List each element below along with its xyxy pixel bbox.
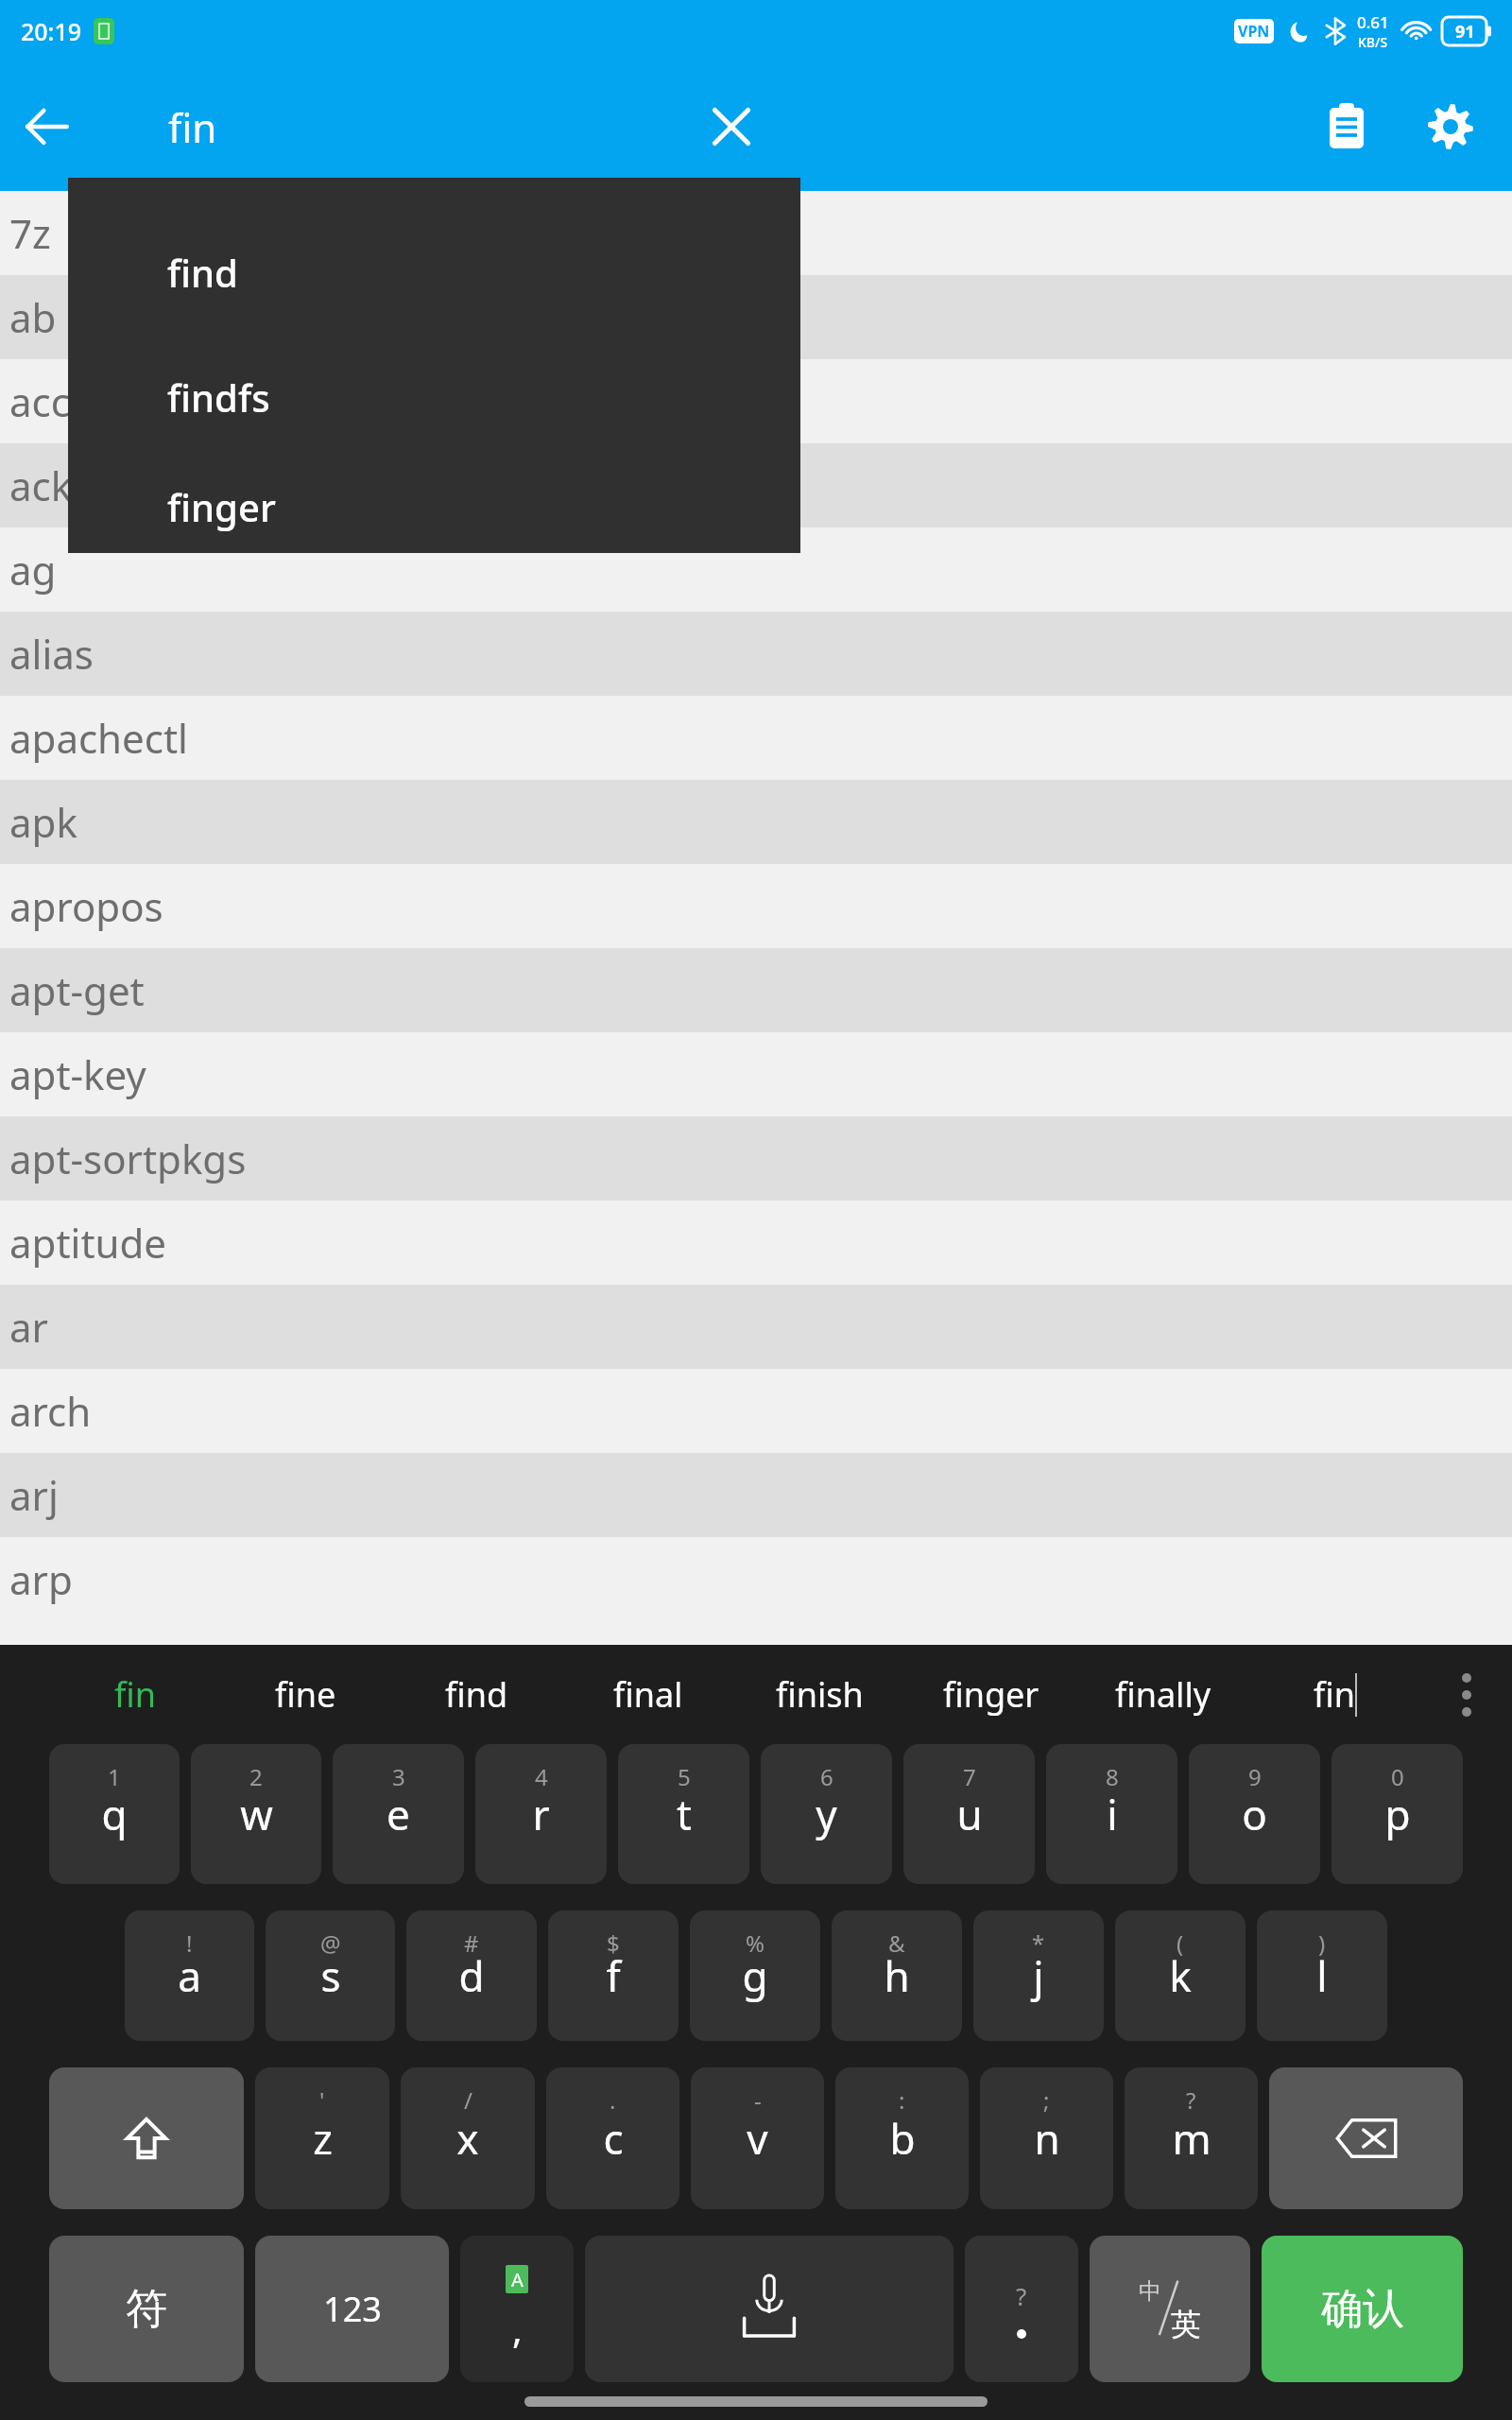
button[interactable]: o — [1189, 1744, 1320, 1884]
button[interactable]: Backspace — [1269, 2067, 1463, 2209]
button[interactable]: ag — [0, 527, 1512, 612]
button[interactable]: arj — [0, 1453, 1512, 1537]
button[interactable]: 符 — [49, 2236, 244, 2382]
button[interactable]: find — [68, 210, 800, 335]
staticText: find — [445, 1671, 508, 1718]
button[interactable]: apachectl — [0, 696, 1512, 780]
button[interactable]: apt-sortpkgs — [0, 1116, 1512, 1201]
button[interactable]: acc — [0, 359, 1512, 443]
button[interactable]: ar — [0, 1285, 1512, 1369]
staticText: m — [1172, 2110, 1211, 2167]
button[interactable]: Switch language — [1090, 2236, 1250, 2382]
staticText: 7z — [9, 206, 51, 260]
button[interactable]: aptitude — [0, 1201, 1512, 1285]
button[interactable]: apk — [0, 780, 1512, 864]
button[interactable]: Settings — [1399, 75, 1503, 179]
staticText: ack — [9, 458, 73, 512]
button[interactable]: e — [333, 1744, 464, 1884]
button[interactable]: arch — [0, 1369, 1512, 1453]
button[interactable]: q — [49, 1744, 180, 1884]
staticText: w — [240, 1786, 273, 1842]
staticText: apk — [9, 795, 77, 849]
button[interactable]: Clear — [679, 75, 783, 179]
staticText: k — [1169, 1947, 1192, 2004]
button[interactable]: finger — [905, 1645, 1077, 1744]
staticText: y — [816, 1786, 837, 1842]
button[interactable]: 123 — [255, 2236, 449, 2382]
button[interactable]: ab — [0, 275, 1512, 359]
button[interactable]: n — [980, 2067, 1113, 2209]
staticText: 9 — [1248, 1761, 1262, 1792]
button[interactable]: fin — [1249, 1645, 1421, 1744]
button[interactable]: arp — [0, 1537, 1512, 1621]
button[interactable]: i — [1046, 1744, 1177, 1884]
staticText: d — [458, 1947, 485, 2004]
staticText: finish — [776, 1671, 864, 1718]
button[interactable]: Space — [585, 2236, 954, 2382]
button[interactable]: ? — [965, 2236, 1078, 2382]
button[interactable]: finally — [1077, 1645, 1249, 1744]
button[interactable]: t — [618, 1744, 749, 1884]
staticText: $ — [607, 1927, 620, 1959]
button[interactable]: g — [690, 1910, 820, 2041]
button[interactable]: alias — [0, 612, 1512, 696]
button[interactable]: p — [1332, 1744, 1463, 1884]
staticText: ? — [1016, 2279, 1027, 2312]
button[interactable]: Shift — [49, 2067, 244, 2209]
staticText: 符 — [126, 2283, 167, 2335]
staticText: 4 — [535, 1761, 548, 1792]
button[interactable]: l — [1257, 1910, 1387, 2041]
button[interactable]: u — [903, 1744, 1035, 1884]
staticText: 3 — [392, 1761, 405, 1792]
staticText: r — [532, 1786, 550, 1842]
button[interactable]: j — [973, 1910, 1104, 2041]
button[interactable]: y — [761, 1744, 892, 1884]
staticText: 6 — [820, 1761, 833, 1792]
button[interactable]: A — [460, 2236, 574, 2382]
button[interactable]: apt-key — [0, 1032, 1512, 1116]
button[interactable]: finger — [68, 459, 800, 553]
button[interactable]: x — [401, 2067, 535, 2209]
staticText: 1 — [108, 1761, 121, 1792]
button[interactable]: r — [475, 1744, 607, 1884]
staticText: ab — [9, 290, 57, 344]
button[interactable]: w — [191, 1744, 321, 1884]
button[interactable]: a — [125, 1910, 254, 2041]
button[interactable]: f — [548, 1910, 679, 2041]
button[interactable]: final — [562, 1645, 733, 1744]
button[interactable]: Clipboard — [1295, 75, 1399, 179]
button[interactable]: m — [1125, 2067, 1258, 2209]
button[interactable]: d — [406, 1910, 537, 2041]
staticText: b — [889, 2110, 916, 2167]
staticText: 英 — [1171, 2306, 1201, 2343]
button[interactable]: fin — [49, 1645, 220, 1744]
staticText: q — [101, 1786, 128, 1842]
button[interactable]: apt-get — [0, 948, 1512, 1032]
staticText: f — [606, 1947, 621, 2004]
staticText: , — [512, 2303, 523, 2354]
button[interactable]: ack — [0, 443, 1512, 527]
staticText: : — [899, 2084, 905, 2116]
button[interactable]: 7z — [0, 191, 1512, 275]
staticText: # — [464, 1927, 479, 1959]
button[interactable]: apropos — [0, 864, 1512, 948]
button[interactable]: finish — [733, 1645, 905, 1744]
button[interactable]: h — [832, 1910, 962, 2041]
staticText: @ — [320, 1927, 341, 1959]
staticText: ar — [9, 1300, 48, 1354]
button[interactable]: findfs — [68, 335, 800, 459]
button[interactable]: c — [546, 2067, 679, 2209]
staticText: finger — [943, 1671, 1039, 1718]
button[interactable]: s — [266, 1910, 395, 2041]
button[interactable]: b — [835, 2067, 969, 2209]
button[interactable]: 确认 — [1262, 2236, 1463, 2382]
staticText: c — [603, 2110, 624, 2167]
button[interactable]: find — [391, 1645, 562, 1744]
button[interactable]: fine — [220, 1645, 391, 1744]
button[interactable]: More options — [1421, 1645, 1512, 1744]
button[interactable]: v — [691, 2067, 824, 2209]
button[interactable]: k — [1115, 1910, 1246, 2041]
button[interactable]: z — [255, 2067, 389, 2209]
staticText: l — [1316, 1947, 1328, 2004]
button[interactable]: Back — [0, 79, 94, 174]
